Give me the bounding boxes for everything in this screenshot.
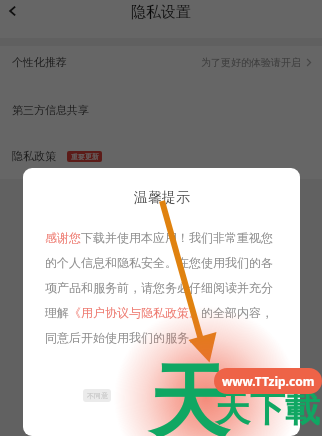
staticText: 为了更好的体验请开启 [201, 56, 301, 69]
staticText: 感谢您下载并使用本应用！我们非常重视您的个人信息和隐私安全。在您使用我们的各项产… [45, 230, 275, 345]
button[interactable]: Back [4, 2, 22, 20]
staticText: 个性化推荐 [12, 55, 67, 69]
staticText: 第三方信息共享 [12, 103, 89, 117]
staticText: www.TTzip.com [222, 373, 315, 389]
button[interactable]: 隐私政策 [0, 133, 322, 179]
staticText: 温馨提示 [134, 189, 190, 207]
staticText: 隐私政策 [12, 149, 56, 163]
button[interactable]: 第三方信息共享 [0, 78, 322, 133]
button[interactable]: 个性化推荐 [0, 46, 322, 78]
staticText: 不同意 [87, 391, 108, 400]
staticText: 天下載 [215, 387, 320, 431]
button[interactable]: 不同意 [83, 389, 111, 402]
staticText: 天 [149, 352, 229, 436]
staticText: 重要更新 [71, 152, 99, 161]
staticText: 隐私设置 [131, 3, 191, 22]
